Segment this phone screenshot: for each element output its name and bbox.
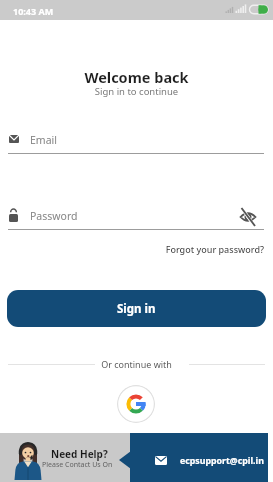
staticText: Sign in: [117, 301, 156, 317]
staticText: Password: [30, 209, 78, 223]
staticText: Sign in to continue: [0, 85, 273, 98]
staticText: Please Contact Us On: [42, 460, 113, 470]
staticText: Forgot your password?: [0, 243, 264, 255]
staticText: 10:43 AM: [13, 5, 54, 17]
button[interactable]: [117, 385, 155, 423]
staticText: Welcome back: [0, 67, 273, 87]
staticText: ecpsupport@cpil.in: [180, 455, 264, 467]
button[interactable]: Sign in: [7, 290, 266, 327]
button[interactable]: [130, 433, 268, 482]
staticText: Or continue with: [0, 358, 273, 370]
button[interactable]: [0, 433, 131, 482]
staticText: Email: [30, 133, 57, 147]
staticText: Need Help?: [51, 447, 108, 461]
